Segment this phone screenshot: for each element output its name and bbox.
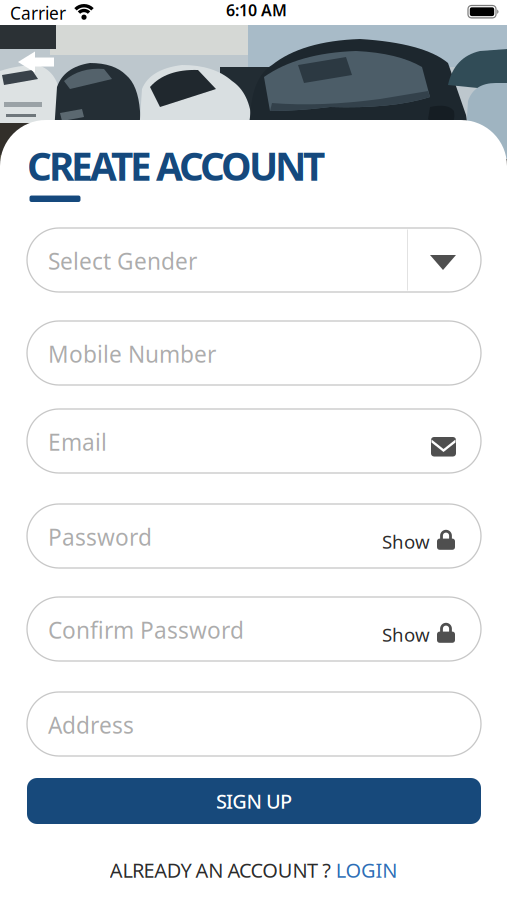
staticText: LOGIN bbox=[336, 857, 397, 883]
staticText: Select Gender bbox=[48, 246, 197, 276]
button[interactable]: Back bbox=[10, 44, 62, 80]
button[interactable]: Email bbox=[27, 409, 481, 473]
button[interactable]: Confirm Password bbox=[27, 597, 481, 661]
staticText: Show bbox=[382, 622, 430, 647]
staticText: Mobile Number bbox=[48, 339, 216, 369]
button[interactable]: LOGIN bbox=[336, 857, 397, 883]
staticText: CREATE ACCOUNT bbox=[27, 140, 325, 191]
button[interactable]: Address bbox=[27, 692, 481, 756]
staticText: Show bbox=[382, 529, 430, 554]
button[interactable]: Password bbox=[27, 504, 481, 568]
staticText: Carrier bbox=[10, 1, 66, 24]
button[interactable]: Select Gender bbox=[27, 228, 481, 292]
staticText: SIGN UP bbox=[216, 788, 292, 814]
staticText: ALREADY AN ACCOUNT ? bbox=[110, 857, 336, 883]
staticText: Email bbox=[48, 427, 107, 457]
button[interactable]: Mobile Number bbox=[27, 321, 481, 385]
staticText: 6:10 AM bbox=[226, 0, 287, 21]
staticText: Confirm Password bbox=[48, 615, 244, 645]
staticText: Password bbox=[48, 522, 152, 552]
staticText: Address bbox=[48, 710, 134, 740]
button[interactable]: SIGN UP bbox=[27, 778, 481, 824]
